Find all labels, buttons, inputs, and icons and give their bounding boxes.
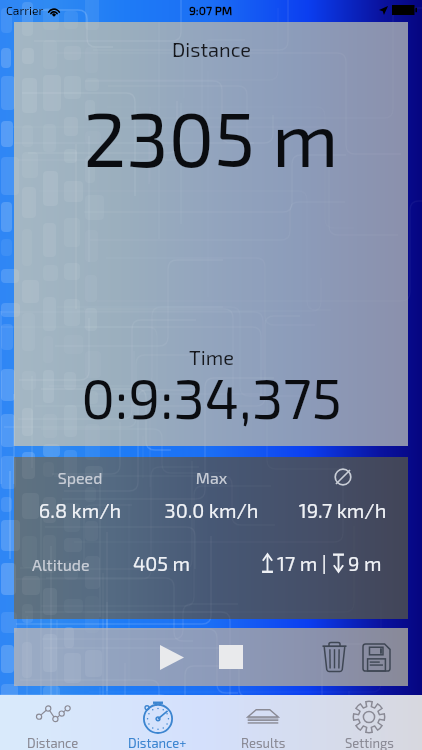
staticText: 2305 m [83, 91, 339, 182]
button[interactable]: Delete [310, 628, 358, 686]
staticText: Distance [27, 735, 79, 750]
staticText: Altitude [32, 555, 90, 574]
staticText: Carrier [6, 3, 44, 17]
button[interactable]: Stop [207, 628, 255, 686]
button[interactable]: Start [148, 628, 196, 686]
staticText: Speed [14, 468, 146, 487]
staticText: Distance [172, 37, 251, 61]
staticText: 30.0 km/h [146, 498, 277, 522]
staticText: 9 m [348, 551, 382, 575]
staticText: Time [189, 345, 234, 369]
staticText: Results [241, 735, 286, 750]
staticText: Settings [345, 735, 394, 750]
button[interactable]: Settings [316, 695, 422, 750]
button[interactable]: Save [352, 628, 400, 686]
staticText: 6.8 km/h [14, 498, 146, 522]
staticText: 405 m [133, 551, 191, 575]
staticText: 17 m | [277, 551, 332, 575]
staticText: Max [146, 468, 277, 487]
button[interactable]: Distance [0, 695, 105, 750]
staticText: 0:9:34,375 [81, 363, 342, 430]
button[interactable]: Distance+ [105, 695, 210, 750]
staticText: Distance+ [128, 735, 187, 750]
staticText: 19.7 km/h [277, 498, 408, 522]
staticText: 9:07 PM [189, 3, 233, 17]
button[interactable]: Results [210, 695, 316, 750]
